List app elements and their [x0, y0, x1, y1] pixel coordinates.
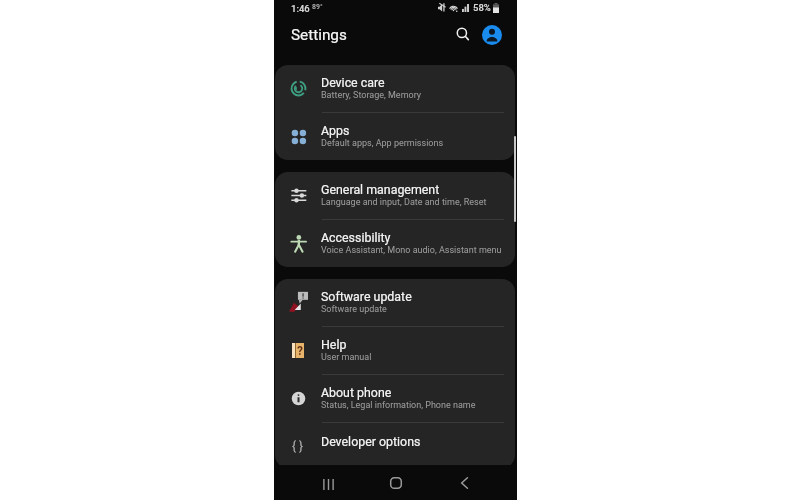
staticText: 58% — [473, 2, 491, 13]
staticText: ? — [297, 344, 303, 358]
button[interactable]: About phone — [275, 375, 515, 422]
button[interactable]: Search — [449, 20, 477, 48]
staticText: 1:46 — [291, 3, 310, 14]
button[interactable]: Software update — [275, 279, 515, 326]
staticText: Help — [321, 337, 347, 352]
staticText: Software update — [321, 304, 387, 315]
staticText: Settings — [291, 26, 347, 44]
button[interactable]: { } — [275, 423, 515, 468]
button[interactable]: Back — [451, 470, 477, 496]
button[interactable]: Device care — [275, 65, 515, 112]
staticText: { } — [292, 439, 304, 453]
staticText: Software update — [321, 289, 412, 304]
button[interactable]: Apps — [275, 113, 515, 160]
staticText: Device care — [321, 75, 385, 90]
button[interactable]: Accessibility — [275, 220, 515, 267]
button[interactable]: Home — [383, 470, 409, 496]
staticText: Battery, Storage, Memory — [321, 90, 422, 101]
staticText: Status, Legal information, Phone name — [321, 400, 476, 411]
staticText: Language and input, Date and time, Reset — [321, 197, 487, 208]
staticText: About phone — [321, 385, 392, 400]
button[interactable]: Account — [479, 22, 505, 48]
staticText: Developer options — [321, 434, 421, 449]
staticText: Default apps, App permissions — [321, 138, 444, 149]
staticText: User manual — [321, 352, 372, 363]
button[interactable]: Recent apps — [315, 471, 341, 497]
staticText: General management — [321, 182, 440, 197]
button[interactable]: ? — [275, 327, 515, 374]
staticText: 89° — [312, 3, 323, 11]
button[interactable]: General management — [275, 172, 515, 219]
staticText: Apps — [321, 123, 350, 138]
staticText: Accessibility — [321, 230, 391, 245]
staticText: Voice Assistant, Mono audio, Assistant m… — [321, 245, 502, 256]
